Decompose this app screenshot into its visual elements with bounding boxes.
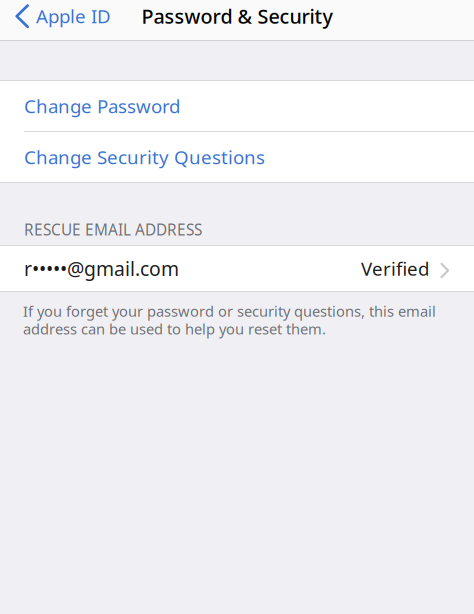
staticText: If you forget your password or security …	[23, 301, 436, 339]
staticText: Password & Security	[141, 3, 332, 29]
staticText: Apple ID	[36, 3, 111, 29]
button[interactable]: Apple ID	[0, 2, 121, 30]
button[interactable]: Change Password	[0, 81, 474, 131]
staticText: Verified	[361, 256, 429, 281]
button[interactable]: r•••••@gmail.com	[0, 246, 474, 291]
staticText: r•••••@gmail.com	[24, 255, 179, 282]
button[interactable]: Change Security Questions	[0, 132, 474, 182]
staticText: Change Security Questions	[24, 144, 265, 170]
staticText: RESCUE EMAIL ADDRESS	[24, 219, 202, 240]
staticText: Change Password	[24, 93, 180, 119]
